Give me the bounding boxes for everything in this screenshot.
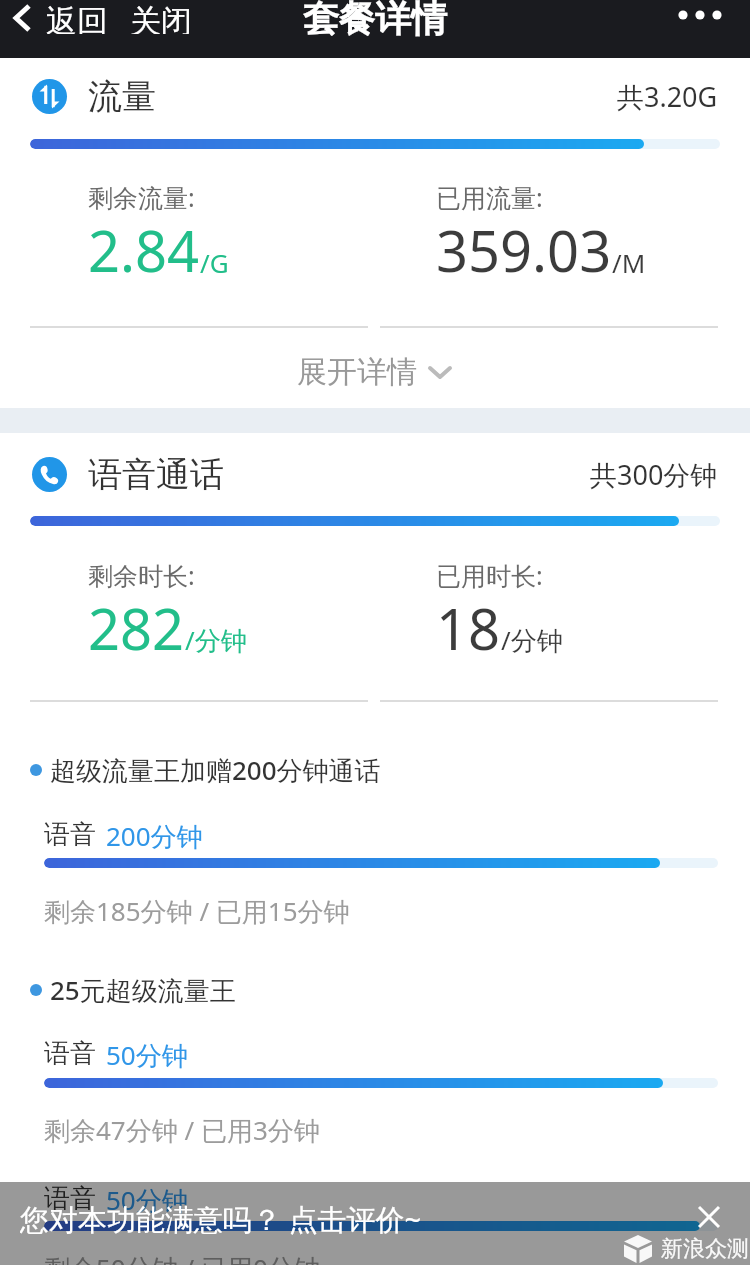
button[interactable]: 您对本功能满意吗？ 点击评价~: [0, 1199, 750, 1235]
staticText: 语音: [44, 1182, 96, 1215]
staticText: 超级流量王加赠200分钟通话: [50, 752, 381, 788]
staticText: 您对本功能满意吗？ 点击评价~: [20, 1199, 422, 1235]
button[interactable]: 返回: [12, 2, 192, 34]
staticText: 282: [88, 590, 185, 666]
staticText: 语音通话: [88, 453, 224, 496]
staticText: 359.03: [436, 212, 612, 288]
staticText: 50分钟: [106, 1037, 188, 1073]
staticText: 2.84: [88, 212, 200, 288]
staticText: /分钟: [185, 622, 247, 658]
staticText: 50分钟: [106, 1182, 188, 1218]
staticText: 展开详情: [297, 353, 417, 391]
staticText: 共3.20G: [617, 78, 718, 115]
staticText: 套餐详情: [303, 0, 447, 41]
staticText: 已用时长:: [436, 558, 543, 592]
staticText: 剩余47分钟 / 已用3分钟: [44, 1112, 320, 1148]
staticText: /M: [612, 245, 646, 280]
staticText: 已用流量:: [436, 180, 543, 214]
staticText: 返回: [46, 2, 108, 34]
staticText: 剩余185分钟 / 已用15分钟: [44, 893, 350, 929]
staticText: 18: [436, 590, 501, 666]
button[interactable]: [698, 1206, 720, 1228]
staticText: 25元超级流量王: [50, 972, 236, 1008]
staticText: 共300分钟: [590, 456, 718, 493]
staticText: /G: [200, 245, 229, 280]
button[interactable]: [676, 10, 722, 20]
button[interactable]: 展开详情: [0, 352, 750, 392]
staticText: 200分钟: [106, 818, 203, 854]
staticText: 剩余流量:: [88, 180, 195, 214]
staticText: 新浪众测: [661, 1235, 749, 1263]
staticText: 关闭: [130, 2, 192, 34]
staticText: 语音: [44, 1037, 96, 1070]
staticText: 剩余时长:: [88, 558, 195, 592]
staticText: /分钟: [501, 622, 563, 658]
staticText: 流量: [88, 75, 156, 118]
staticText: 剩余50分钟 / 已用0分钟: [44, 1250, 320, 1265]
staticText: 语音: [44, 818, 96, 851]
